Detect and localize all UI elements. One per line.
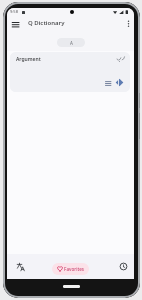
button[interactable]: Favorites — [52, 263, 89, 275]
button[interactable] — [15, 261, 27, 273]
button[interactable] — [10, 20, 22, 30]
button[interactable] — [118, 261, 129, 272]
button[interactable] — [115, 78, 124, 87]
staticText: Argument — [16, 56, 41, 63]
staticText: Favorites — [64, 266, 85, 272]
staticText: Q Dictionary — [28, 19, 65, 27]
staticText: 9:58 — [10, 9, 18, 14]
button[interactable] — [104, 79, 113, 87]
staticText: A — [70, 40, 73, 46]
button[interactable]: A — [57, 38, 85, 47]
button[interactable] — [124, 19, 133, 30]
button[interactable]: Argument — [10, 52, 130, 92]
